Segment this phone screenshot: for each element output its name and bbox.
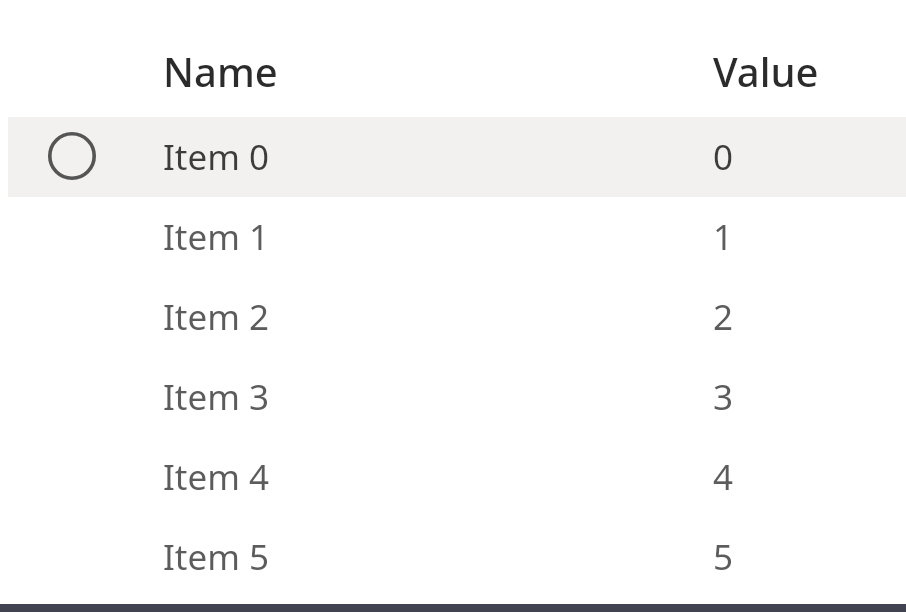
button[interactable]: Item 3 — [0, 357, 906, 437]
staticText: 0 — [713, 133, 734, 181]
staticText: 2 — [713, 293, 734, 341]
staticText: Item 0 — [163, 133, 270, 181]
staticText: 5 — [713, 533, 734, 581]
button[interactable]: Item 1 — [0, 197, 906, 277]
staticText: Value — [713, 44, 819, 98]
button[interactable]: Item 5 — [0, 517, 906, 597]
staticText: 1 — [713, 213, 734, 261]
button[interactable]: Item 2 — [0, 277, 906, 357]
button[interactable] — [8, 117, 906, 197]
button[interactable]: Select Item 0 — [48, 132, 96, 180]
staticText: Name — [163, 44, 278, 98]
button[interactable]: Name — [163, 44, 278, 98]
staticText: 4 — [713, 453, 734, 501]
staticText: Item 1 — [163, 213, 270, 261]
staticText: 3 — [713, 373, 734, 421]
staticText: Item 5 — [163, 533, 270, 581]
staticText: Item 4 — [163, 453, 270, 501]
button[interactable]: Item 0 — [0, 117, 906, 197]
button[interactable]: Item 4 — [0, 437, 906, 517]
staticText: Item 2 — [163, 293, 270, 341]
button[interactable]: Value — [713, 44, 819, 98]
staticText: Item 3 — [163, 373, 270, 421]
